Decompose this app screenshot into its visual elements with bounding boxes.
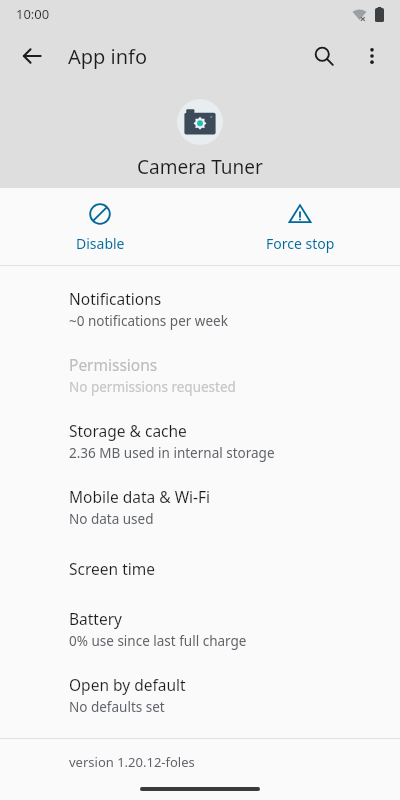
staticText: Force stop xyxy=(266,234,335,253)
button[interactable]: Force stop xyxy=(200,188,400,265)
button[interactable]: Notifications xyxy=(0,276,400,342)
staticText: Open by default xyxy=(69,674,186,695)
button[interactable]: Search xyxy=(300,32,348,80)
staticText: Permissions xyxy=(69,354,158,375)
button[interactable]: Permissions xyxy=(0,342,400,408)
staticText: Notifications xyxy=(69,288,162,309)
button[interactable]: Mobile data & Wi-Fi xyxy=(0,474,400,540)
staticText: Camera Tuner xyxy=(137,154,263,180)
staticText: No data used xyxy=(69,510,154,528)
staticText: 10:00 xyxy=(16,5,50,23)
button[interactable]: Disable xyxy=(0,188,200,265)
button[interactable]: Open by default xyxy=(0,662,400,728)
staticText: Mobile data & Wi-Fi xyxy=(69,486,211,507)
staticText: version 1.20.12-foles xyxy=(69,753,195,771)
button[interactable]: Screen time xyxy=(0,540,400,596)
staticText: Battery xyxy=(69,608,123,629)
staticText: Storage & cache xyxy=(69,420,187,441)
staticText: Disable xyxy=(76,234,125,253)
staticText: Screen time xyxy=(69,558,155,579)
button[interactable]: Storage & cache xyxy=(0,408,400,474)
staticText: 0% use since last full charge xyxy=(69,632,247,650)
staticText: No defaults set xyxy=(69,698,165,716)
staticText: No permissions requested xyxy=(69,378,236,396)
staticText: ~0 notifications per week xyxy=(69,312,228,330)
staticText: App info xyxy=(68,43,148,70)
button[interactable]: More options xyxy=(348,32,396,80)
button[interactable]: Back xyxy=(8,32,56,80)
staticText: 2.36 MB used in internal storage xyxy=(69,444,275,462)
button[interactable]: Battery xyxy=(0,596,400,662)
